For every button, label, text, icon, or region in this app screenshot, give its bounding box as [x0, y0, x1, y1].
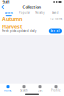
button[interactable]: Latest [1, 11, 16, 16]
button[interactable]: Popular [16, 11, 32, 16]
staticText: Harvest [2, 23, 22, 30]
button[interactable]: Search [16, 85, 32, 92]
staticText: See all [50, 29, 60, 33]
staticText: Saved [52, 11, 59, 14]
button[interactable]: Profile [48, 85, 64, 92]
staticText: Cart [37, 89, 42, 92]
staticText: Profile [51, 89, 61, 92]
button[interactable]: Back [0, 5, 6, 9]
staticText: Nearby [35, 11, 44, 14]
staticText: 12 items [50, 17, 62, 20]
staticText: Search [20, 89, 28, 92]
button[interactable]: Home [0, 85, 16, 92]
button[interactable]: Nearby [32, 11, 47, 16]
button[interactable]: Cart [32, 85, 48, 92]
staticText: Latest [5, 11, 13, 14]
staticText: Popular [19, 11, 30, 14]
button[interactable]: See all [49, 28, 62, 33]
staticText: Collection [22, 4, 41, 10]
button[interactable]: Saved [47, 11, 63, 16]
staticText: 9:41 [2, 0, 9, 5]
staticText: Fresh picks updated daily [2, 29, 36, 33]
staticText: Autumn [2, 15, 22, 23]
staticText: Home [4, 89, 12, 92]
